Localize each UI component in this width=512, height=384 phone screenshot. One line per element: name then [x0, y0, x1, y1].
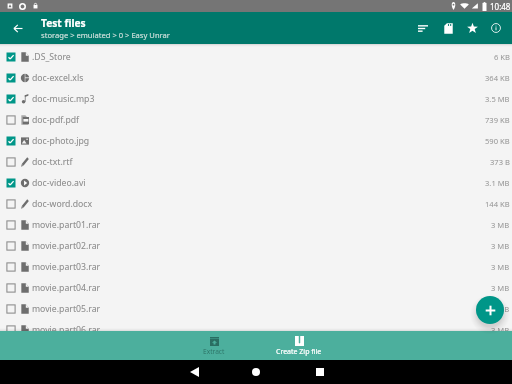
staticText: storage > emulated > 0 > Easy Unrar: [41, 30, 170, 40]
button[interactable]: doc-pdf.pdf: [0, 109, 512, 130]
staticText: doc-photo.jpg: [32, 135, 90, 147]
staticText: Extract: [203, 347, 225, 356]
staticText: Test files: [41, 16, 86, 30]
staticText: 3.1 MB: [485, 178, 510, 188]
staticText: 6 KB: [494, 52, 510, 62]
button[interactable]: movie.part04.rar: [0, 277, 512, 298]
button[interactable]: Extract: [178, 331, 250, 360]
staticText: movie.part05.rar: [32, 303, 101, 315]
staticText: movie.part06.rar: [32, 324, 101, 331]
button[interactable]: movie.part01.rar: [0, 214, 512, 235]
staticText: doc-txt.rtf: [32, 156, 73, 168]
staticText: 3 MB: [491, 325, 510, 331]
staticText: doc-word.docx: [32, 198, 93, 210]
button[interactable]: Create Zip file: [263, 331, 335, 360]
staticText: movie.part01.rar: [32, 219, 101, 231]
button[interactable]: Sort: [411, 12, 435, 44]
button[interactable]: .DS_Store: [0, 46, 512, 67]
staticText: 3 MB: [491, 241, 510, 251]
button[interactable]: movie.part05.rar: [0, 298, 512, 319]
button[interactable]: doc-video.avi: [0, 172, 512, 193]
staticText: 3 MB: [491, 304, 510, 314]
button[interactable]: Back: [6, 16, 30, 40]
button[interactable]: Storage: [436, 12, 460, 44]
button[interactable]: Favorites: [460, 12, 484, 44]
staticText: doc-music.mp3: [32, 93, 95, 105]
button[interactable]: Back: [182, 360, 206, 384]
staticText: 739 KB: [485, 115, 510, 125]
staticText: 3 MB: [491, 220, 510, 230]
button[interactable]: doc-txt.rtf: [0, 151, 512, 172]
staticText: movie.part02.rar: [32, 240, 101, 252]
staticText: 3.5 MB: [485, 94, 510, 104]
button[interactable]: doc-word.docx: [0, 193, 512, 214]
staticText: Create Zip file: [276, 347, 322, 357]
button[interactable]: Recents: [308, 360, 332, 384]
staticText: 3 MB: [491, 283, 510, 293]
button[interactable]: doc-excel.xls: [0, 67, 512, 88]
staticText: doc-video.avi: [32, 177, 86, 189]
button[interactable]: Home: [244, 360, 268, 384]
button[interactable]: movie.part03.rar: [0, 256, 512, 277]
button[interactable]: Info: [484, 12, 508, 44]
staticText: movie.part03.rar: [32, 261, 101, 273]
staticText: 10:48: [490, 1, 511, 12]
button[interactable]: movie.part06.rar: [0, 319, 512, 331]
button[interactable]: doc-photo.jpg: [0, 130, 512, 151]
button[interactable]: movie.part02.rar: [0, 235, 512, 256]
button[interactable]: doc-music.mp3: [0, 88, 512, 109]
staticText: 364 KB: [485, 73, 510, 83]
button[interactable]: Add: [476, 296, 504, 324]
staticText: 144 KB: [485, 199, 510, 209]
staticText: .DS_Store: [32, 51, 71, 63]
staticText: 373 B: [490, 157, 510, 167]
staticText: 3 MB: [491, 262, 510, 272]
staticText: doc-pdf.pdf: [32, 114, 80, 126]
staticText: doc-excel.xls: [32, 72, 84, 84]
staticText: 590 KB: [485, 136, 510, 146]
staticText: movie.part04.rar: [32, 282, 101, 294]
